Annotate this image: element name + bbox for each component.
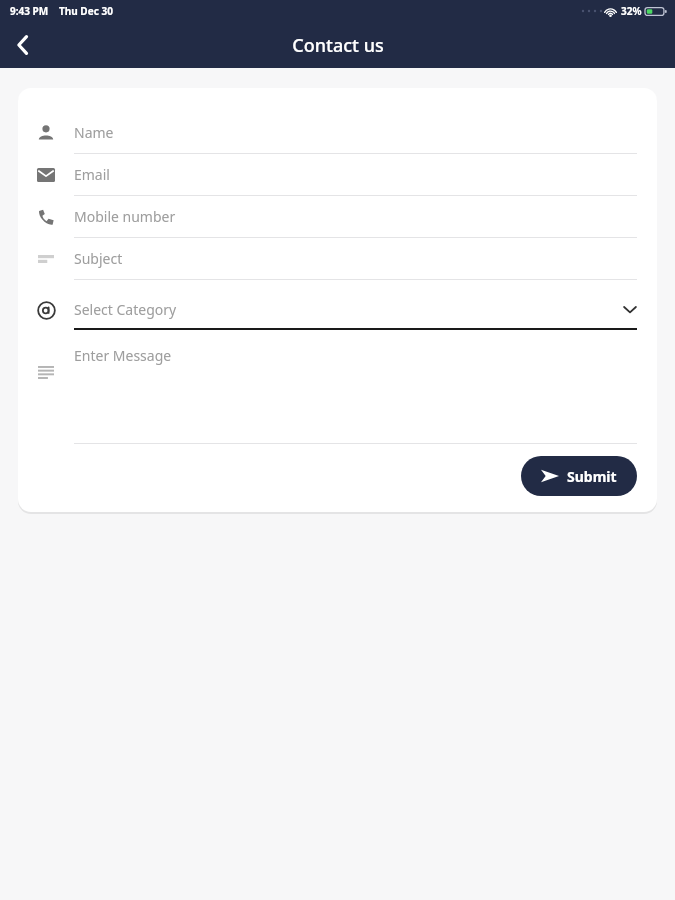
button[interactable]: Enter Message [18,330,657,444]
button[interactable]: Mobile number [18,196,657,238]
button[interactable]: Email [18,154,657,196]
staticText: Enter Message [74,346,172,365]
staticText: Contact us [292,33,384,58]
staticText: Select Category [74,300,623,319]
button[interactable]: Back [0,22,46,68]
staticText: 32% [621,4,642,18]
staticText: Mobile number [74,207,176,226]
staticText: Thu Dec 30 [59,4,113,18]
button[interactable]: Subject [18,238,657,280]
button[interactable]: Submit [521,456,637,496]
staticText: Submit [567,467,617,486]
button[interactable]: Select Category [18,290,657,330]
staticText: Email [74,165,110,184]
staticText: 9:43 PM [10,4,49,18]
staticText: Subject [74,249,123,268]
staticText: Name [74,123,114,142]
button[interactable]: Name [18,112,657,154]
